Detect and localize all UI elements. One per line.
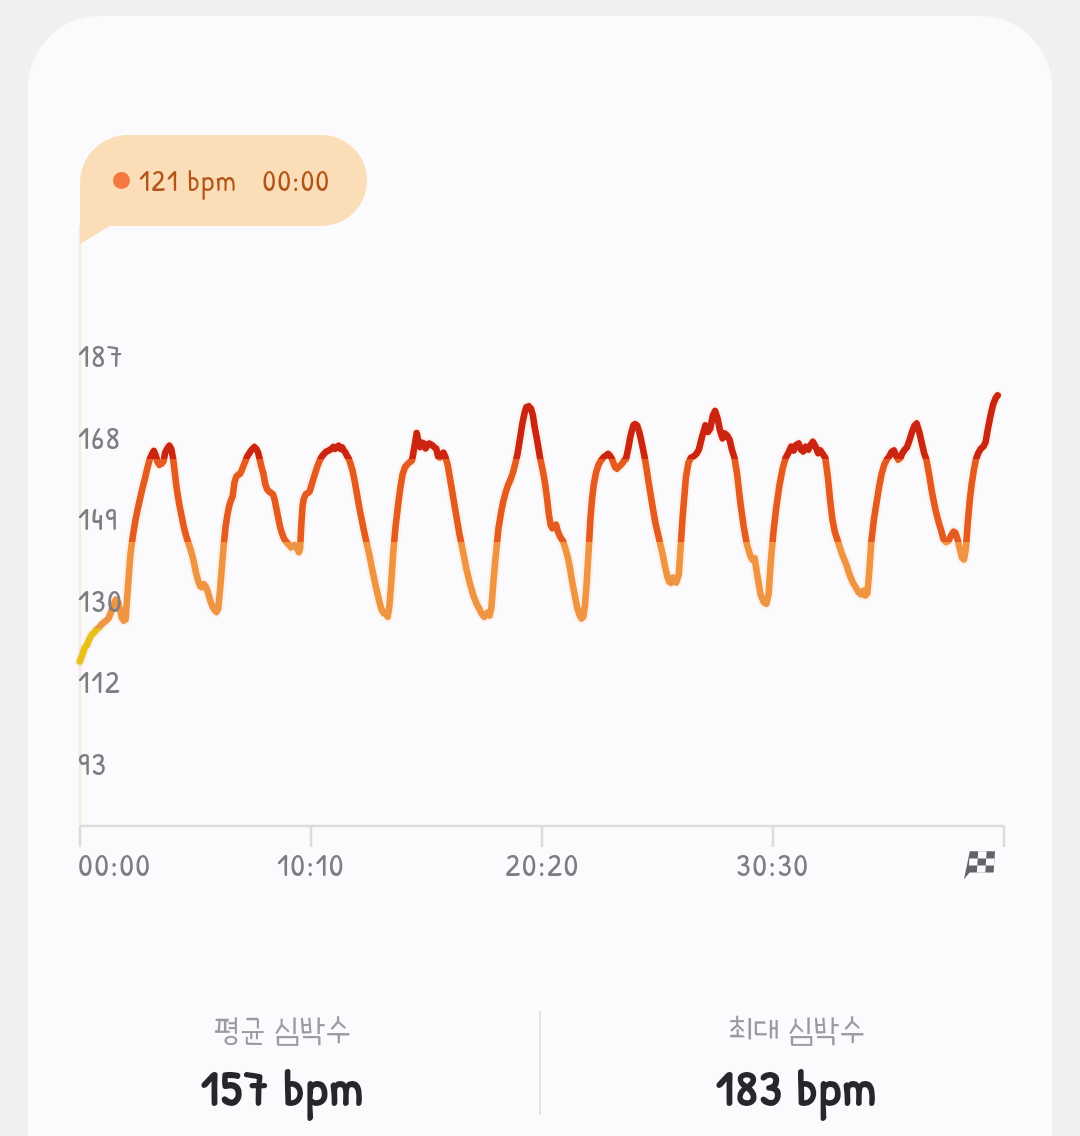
staticText: 183 bpm — [715, 1055, 878, 1121]
staticText: 30:30 — [736, 843, 810, 886]
staticText: 149 — [78, 497, 119, 540]
staticText: 130 — [78, 579, 124, 622]
staticText: 00:00 — [78, 843, 152, 886]
button[interactable]: 121 bpm 00:00 — [80, 135, 367, 226]
button[interactable]: 최대 심박수 — [606, 1002, 986, 1114]
staticText: 20:20 — [505, 843, 580, 886]
staticText: 평균 심박수 — [214, 1014, 351, 1046]
button[interactable]: Finish lap — [960, 846, 1000, 886]
staticText: 121 bpm 00:00 — [139, 160, 331, 201]
staticText: 168 — [78, 416, 122, 459]
staticText: 93 — [78, 742, 108, 785]
staticText: 최대 심박수 — [728, 1014, 865, 1046]
staticText: 187 — [78, 334, 125, 377]
staticText: 112 — [78, 660, 122, 703]
staticText: 10:10 — [277, 843, 345, 886]
staticText: 157 bpm — [200, 1055, 364, 1121]
button[interactable]: 평균 심박수 — [92, 1002, 472, 1114]
